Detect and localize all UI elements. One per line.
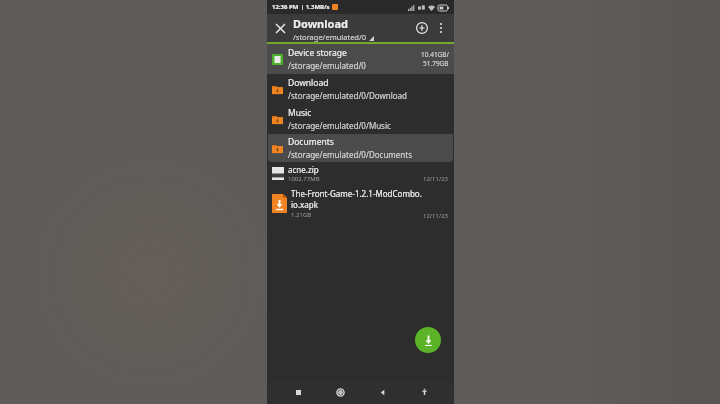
staticText: | 1.3MB/s [301,3,330,11]
staticText: Documents [288,136,334,148]
staticText: /storage/emulated/0/Documents [288,149,413,160]
button[interactable]: Recents [288,382,308,402]
button[interactable]: Music [267,104,454,134]
button[interactable]: Device storage [267,44,454,74]
button[interactable]: Download [267,74,454,104]
staticText: Device storage [288,47,347,59]
staticText: acne.zip [288,164,319,175]
staticText: 12/11/23 [423,212,449,220]
staticText: 51.79GB [423,59,449,68]
button[interactable]: Add [412,18,432,38]
staticText: 12/11/23 [423,175,449,183]
staticText: /storage/emulated/0 [293,32,367,42]
button[interactable]: acne.zip [267,162,454,184]
staticText: Download [293,16,348,31]
staticText: /storage/emulated/0/Music [288,120,391,131]
staticText: 10.41GB/ [421,50,449,59]
button[interactable]: Download [415,327,441,353]
button[interactable]: Close [270,18,290,38]
staticText: Music [288,107,312,119]
button[interactable]: Documents [268,134,453,162]
staticText: io.xapk [291,199,318,210]
staticText: /storage/emulated/0/Download [288,90,407,101]
staticText: /storage/emulated/0 [288,60,366,71]
button[interactable]: More options [432,19,450,37]
staticText: 12:36 PM [272,3,299,11]
button[interactable]: Hide keyboard [414,382,434,402]
button[interactable]: The-Front-Game-1.2.1-ModCombo. [267,184,454,222]
staticText: 1.21GB [291,211,312,219]
staticText: The-Front-Game-1.2.1-ModCombo. [291,188,422,199]
button[interactable]: Back [372,382,392,402]
button[interactable]: Home [330,382,350,402]
staticText: 1002.77MB [288,175,320,183]
staticText: Download [288,77,329,89]
